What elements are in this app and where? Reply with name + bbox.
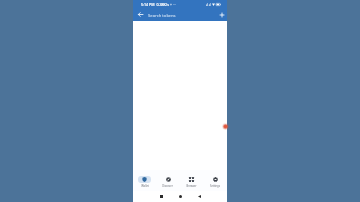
staticText: Wallet — [141, 184, 149, 188]
button[interactable]: Wallet — [133, 170, 156, 191]
button[interactable]: Settings — [203, 170, 227, 191]
staticText: 5:14 PM 0.38K/s — [141, 2, 169, 7]
staticText: Search tokens — [148, 13, 176, 19]
button[interactable]: Add — [216, 9, 227, 20]
staticText: Settings — [210, 184, 220, 188]
button[interactable]: Back — [135, 9, 146, 20]
button[interactable]: Browser — [179, 170, 203, 191]
staticText: Discover — [162, 184, 173, 188]
staticText: Browser — [186, 184, 197, 188]
button[interactable]: Discover — [156, 170, 179, 191]
button[interactable]: Add token — [223, 124, 228, 129]
